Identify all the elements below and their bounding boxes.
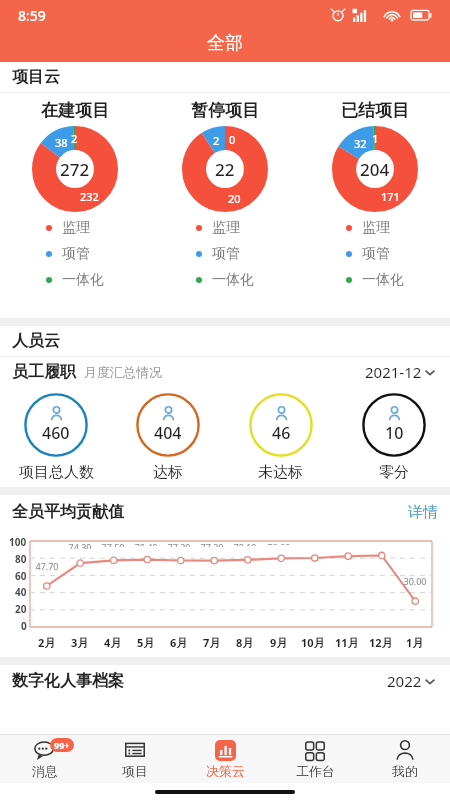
staticText: 11月 <box>335 635 359 650</box>
staticText: 零分 <box>379 463 409 482</box>
other: 我的 <box>394 739 416 761</box>
staticText: 60 <box>15 569 27 583</box>
staticText: 80 <box>15 552 27 566</box>
staticText: 77.50 <box>101 541 125 547</box>
staticText: 数字化人事档案 <box>12 671 124 691</box>
staticText: 99+ <box>54 739 70 751</box>
staticText: 3月 <box>71 635 89 650</box>
staticText: 人员云 <box>12 331 60 351</box>
staticText: 项管 <box>212 245 240 263</box>
staticText: 1 <box>372 131 379 146</box>
staticText: 在建项目 <box>41 100 109 121</box>
staticText: 0 <box>229 132 236 147</box>
staticText: 78.10 <box>233 541 257 546</box>
staticText: 79.80 <box>267 541 291 545</box>
staticText: 2 <box>71 131 78 146</box>
staticText: 2月 <box>38 635 56 650</box>
staticText: 40 <box>15 585 27 599</box>
other: 消息 <box>34 739 56 761</box>
staticText: 20 <box>228 191 241 206</box>
staticText: 20 <box>15 602 27 616</box>
staticText: 22 <box>215 158 235 181</box>
staticText: 204 <box>360 158 390 181</box>
staticText: 9月 <box>270 635 288 650</box>
staticText: 82.40 <box>335 541 359 544</box>
button[interactable]: 已结项目 <box>300 93 450 318</box>
staticText: 项目 <box>122 763 148 779</box>
button[interactable]: 404 <box>112 393 224 482</box>
staticText: 项管 <box>362 245 390 263</box>
staticText: 2021-12 <box>365 362 422 382</box>
staticText: 6月 <box>170 635 188 650</box>
staticText: 详情 <box>408 503 438 522</box>
staticText: 暂停项目 <box>191 100 259 121</box>
staticText: 38 <box>55 135 68 150</box>
staticText: 消息 <box>32 763 58 779</box>
staticText: 一体化 <box>362 271 404 289</box>
staticText: 已结项目 <box>341 100 409 121</box>
button[interactable]: 2022 <box>387 671 438 691</box>
staticText: 全员平均贡献值 <box>12 502 124 522</box>
staticText: 30.00 <box>403 575 427 587</box>
button[interactable]: 我的 <box>360 735 450 783</box>
staticText: 监理 <box>62 219 90 237</box>
staticText: 项管 <box>62 245 90 263</box>
button[interactable]: 决策云 <box>180 735 270 783</box>
button[interactable]: 消息 <box>0 735 90 783</box>
staticText: 月度汇总情况 <box>84 364 162 380</box>
staticText: 12月 <box>369 635 393 650</box>
button[interactable]: 2021-12 <box>365 362 438 382</box>
other: 项目 <box>124 739 146 761</box>
button[interactable]: 46 <box>224 393 337 482</box>
staticText: 我的 <box>392 763 418 779</box>
staticText: 工作台 <box>296 763 335 779</box>
staticText: 404 <box>154 422 182 444</box>
staticText: 78.40 <box>134 541 158 546</box>
staticText: 员工履职 <box>12 362 76 382</box>
button[interactable]: 10 <box>337 393 450 482</box>
button[interactable]: 460 <box>0 393 112 482</box>
staticText: 100 <box>9 535 27 549</box>
staticText: 2022 <box>387 671 422 691</box>
staticText: 5月 <box>137 635 155 650</box>
button[interactable]: 详情 <box>408 503 438 522</box>
button[interactable]: 工作台 <box>270 735 360 783</box>
button[interactable]: 暂停项目 <box>150 93 300 318</box>
staticText: 10月 <box>301 635 325 650</box>
staticText: 一体化 <box>212 271 254 289</box>
staticText: 监理 <box>362 219 390 237</box>
staticText: 74.30 <box>68 541 92 549</box>
staticText: 83.20 <box>369 541 393 544</box>
other: 工作台 <box>304 739 326 761</box>
button[interactable]: 在建项目 <box>0 93 150 318</box>
staticText: 47.70 <box>35 560 59 572</box>
button[interactable]: 项目 <box>90 735 180 783</box>
staticText: 7月 <box>203 635 221 650</box>
staticText: 80.20 <box>301 541 325 544</box>
staticText: 0 <box>21 619 27 633</box>
staticText: 77.20 <box>200 541 224 547</box>
staticText: 监理 <box>212 219 240 237</box>
staticText: 77.30 <box>167 541 191 547</box>
staticText: 4月 <box>104 635 122 650</box>
staticText: 项目总人数 <box>19 463 94 482</box>
staticText: 171 <box>381 189 400 204</box>
staticText: 8月 <box>236 635 254 650</box>
staticText: 32 <box>354 136 367 151</box>
staticText: 一体化 <box>62 271 104 289</box>
staticText: 项目云 <box>12 67 60 87</box>
other: 决策云 <box>215 740 236 761</box>
staticText: 全部 <box>207 32 243 55</box>
staticText: 1月 <box>406 635 424 650</box>
staticText: 232 <box>80 189 99 204</box>
staticText: 2 <box>213 133 220 148</box>
staticText: 8:59 <box>18 6 46 25</box>
staticText: 272 <box>60 158 90 181</box>
staticText: 达标 <box>153 463 183 482</box>
staticText: 未达标 <box>258 463 303 482</box>
staticText: 46 <box>272 422 291 444</box>
staticText: 决策云 <box>206 763 245 779</box>
staticText: 460 <box>42 422 70 444</box>
staticText: 10 <box>385 422 404 444</box>
